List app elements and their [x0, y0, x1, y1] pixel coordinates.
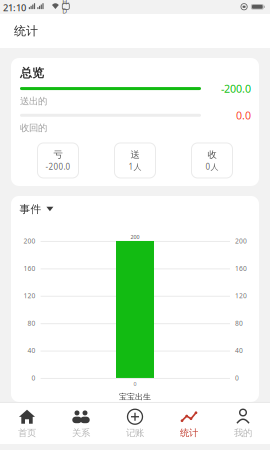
staticText: 0 — [235, 373, 239, 382]
staticText: 宝宝出生 — [119, 392, 151, 402]
button[interactable]: 记账 — [108, 403, 162, 444]
button[interactable]: 关系 — [54, 403, 108, 444]
staticText: -200.0 — [221, 81, 251, 96]
staticText: 200 — [130, 233, 139, 241]
staticText: 160 — [235, 264, 247, 273]
staticText: 160 — [24, 264, 36, 273]
staticText: 21:10 — [3, 1, 26, 14]
button[interactable]: 收 — [191, 143, 232, 178]
staticText: 首页 — [18, 427, 36, 439]
staticText: 80 — [28, 319, 36, 328]
staticText: 0.0 — [236, 108, 251, 122]
staticText: 40 — [235, 346, 243, 355]
staticText: 亏 — [53, 149, 62, 160]
button[interactable]: 亏 — [37, 143, 78, 178]
staticText: 0人 — [205, 161, 218, 172]
staticText: 总览 — [20, 66, 44, 80]
staticText: 统计 — [180, 427, 198, 439]
staticText: 40 — [28, 346, 36, 355]
staticText: 收 — [207, 149, 216, 160]
staticText: 我的 — [234, 427, 252, 439]
staticText: 0 — [133, 380, 136, 388]
staticText: 200 — [235, 236, 247, 245]
staticText: 1人 — [128, 161, 141, 172]
staticText: -200.0 — [45, 161, 70, 172]
button[interactable]: 统计 — [162, 403, 216, 444]
staticText: 200 — [24, 236, 36, 245]
staticText: 80 — [235, 319, 243, 328]
staticText: 统计 — [14, 24, 38, 38]
staticText: 事件 — [19, 203, 41, 216]
staticText: 0 — [32, 373, 36, 382]
button[interactable]: 事件 — [19, 203, 53, 216]
staticText: 120 — [235, 291, 247, 300]
staticText: HD — [62, 0, 69, 15]
button[interactable]: 我的 — [216, 403, 270, 444]
staticText: 关系 — [72, 427, 90, 439]
button[interactable]: 首页 — [0, 403, 54, 444]
staticText: 送出的 — [20, 95, 47, 107]
staticText: 送 — [130, 149, 139, 160]
staticText: 记账 — [126, 427, 144, 439]
staticText: 收回的 — [20, 122, 47, 134]
button[interactable]: 送 — [114, 143, 155, 178]
staticText: 120 — [24, 291, 36, 300]
